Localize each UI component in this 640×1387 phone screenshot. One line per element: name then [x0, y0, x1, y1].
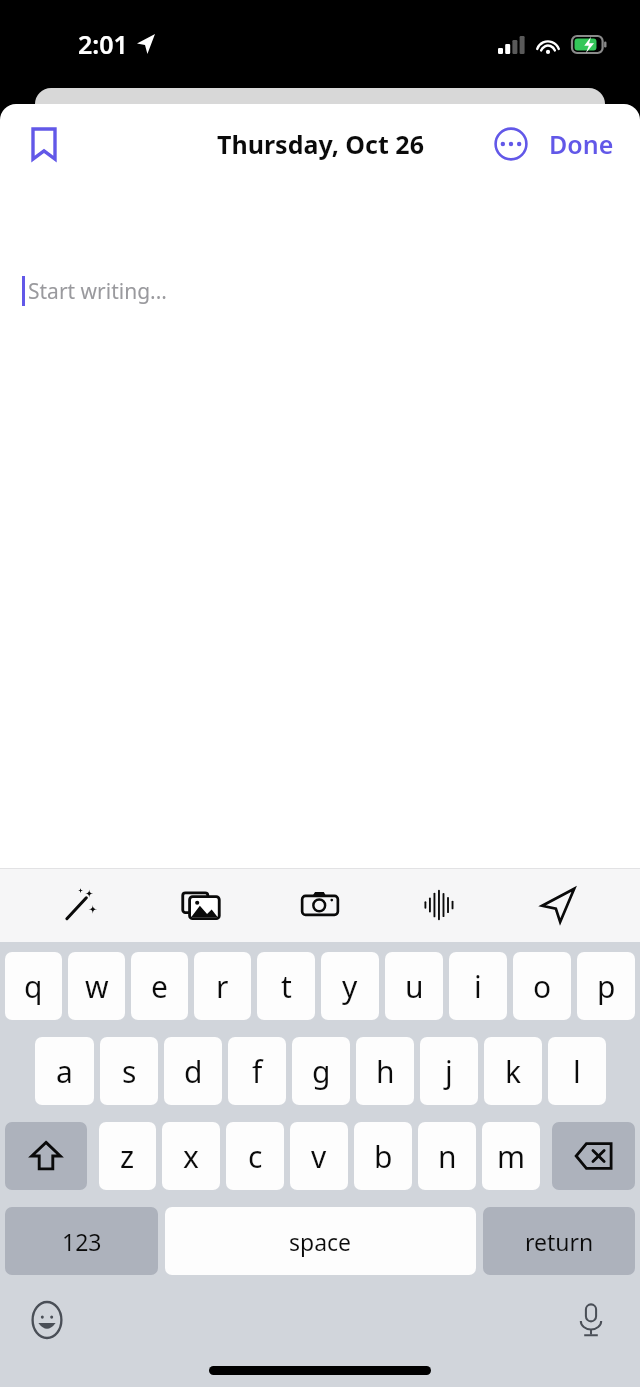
button[interactable]: k: [484, 1037, 542, 1105]
staticText: t: [281, 966, 292, 1007]
staticText: b: [374, 1136, 393, 1177]
staticText: i: [474, 966, 482, 1007]
button[interactable]: Done: [543, 119, 620, 169]
staticText: m: [497, 1136, 526, 1177]
staticText: return: [525, 1226, 594, 1257]
staticText: n: [438, 1136, 457, 1177]
staticText: p: [597, 966, 616, 1007]
button[interactable]: p: [577, 952, 635, 1020]
staticText: Thursday, Oct 26: [217, 127, 424, 161]
staticText: e: [151, 966, 168, 1007]
button[interactable]: o: [513, 952, 571, 1020]
staticText: a: [56, 1051, 73, 1092]
staticText: h: [376, 1051, 395, 1092]
button[interactable]: return: [483, 1207, 635, 1275]
button[interactable]: r: [194, 952, 251, 1020]
staticText: 2:01: [78, 27, 128, 61]
staticText: 123: [62, 1226, 102, 1257]
button[interactable]: f: [228, 1037, 286, 1105]
button[interactable]: Bookmark: [16, 116, 72, 172]
button[interactable]: a: [35, 1037, 94, 1105]
button[interactable]: Dictation: [564, 1293, 618, 1347]
button[interactable]: Shift: [5, 1122, 87, 1190]
button[interactable]: m: [482, 1122, 540, 1190]
button[interactable]: Backspace: [552, 1122, 635, 1190]
button[interactable]: i: [449, 952, 507, 1020]
button[interactable]: w: [68, 952, 125, 1020]
button[interactable]: g: [292, 1037, 350, 1105]
button[interactable]: More options: [487, 120, 535, 168]
button[interactable]: e: [131, 952, 188, 1020]
staticText: q: [24, 966, 43, 1007]
staticText: z: [120, 1136, 135, 1177]
button[interactable]: Emoji: [20, 1293, 74, 1347]
button[interactable]: j: [420, 1037, 478, 1105]
staticText: f: [252, 1051, 263, 1092]
button[interactable]: n: [418, 1122, 476, 1190]
staticText: c: [248, 1136, 263, 1177]
staticText: l: [573, 1051, 581, 1092]
button[interactable]: v: [290, 1122, 348, 1190]
button[interactable]: s: [100, 1037, 158, 1105]
button[interactable]: t: [257, 952, 315, 1020]
staticText: u: [405, 966, 424, 1007]
staticText: y: [342, 966, 358, 1007]
button[interactable]: u: [385, 952, 443, 1020]
button[interactable]: b: [354, 1122, 412, 1190]
button[interactable]: h: [356, 1037, 414, 1105]
button[interactable]: q: [5, 952, 62, 1020]
button[interactable]: c: [226, 1122, 284, 1190]
button[interactable]: Photo library: [171, 875, 231, 935]
staticText: w: [85, 966, 109, 1007]
staticText: d: [184, 1051, 203, 1092]
button[interactable]: Send: [528, 875, 588, 935]
staticText: r: [216, 966, 229, 1007]
button[interactable]: l: [548, 1037, 606, 1105]
button[interactable]: y: [321, 952, 379, 1020]
button[interactable]: x: [162, 1122, 220, 1190]
staticText: x: [183, 1136, 199, 1177]
button[interactable]: Camera: [290, 875, 350, 935]
button[interactable]: z: [99, 1122, 156, 1190]
button[interactable]: Audio recording: [409, 875, 469, 935]
button[interactable]: space: [165, 1207, 476, 1275]
button[interactable]: Magic formatting: [52, 875, 112, 935]
staticText: v: [311, 1136, 327, 1177]
staticText: o: [533, 966, 552, 1007]
staticText: s: [122, 1051, 137, 1092]
staticText: Start writing...: [28, 277, 167, 306]
staticText: g: [312, 1051, 331, 1092]
staticText: Done: [549, 127, 614, 161]
button[interactable]: d: [164, 1037, 222, 1105]
staticText: j: [445, 1051, 453, 1092]
button[interactable]: 123: [5, 1207, 158, 1275]
staticText: k: [505, 1051, 522, 1092]
staticText: space: [289, 1226, 352, 1257]
